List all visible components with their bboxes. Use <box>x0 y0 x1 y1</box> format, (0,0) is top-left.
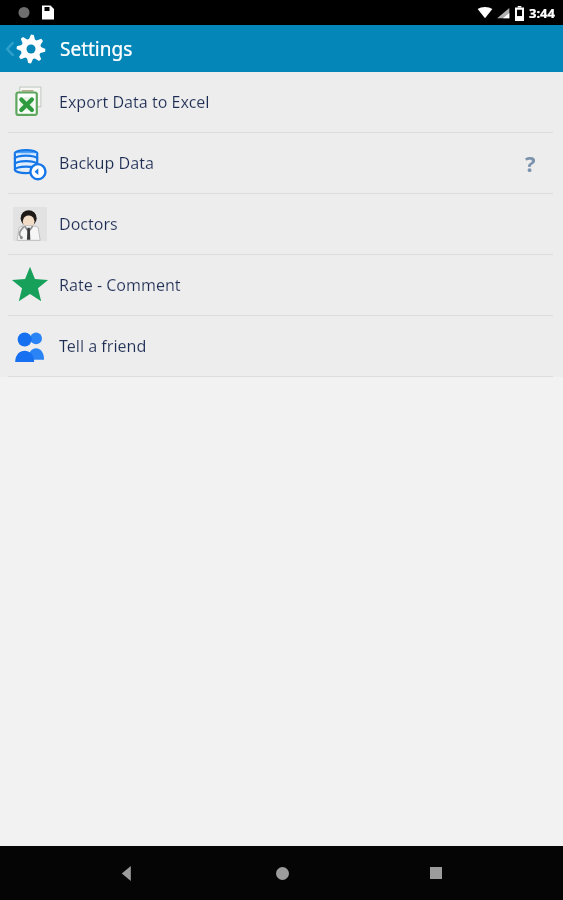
staticText: Export Data to Excel <box>59 91 210 113</box>
button[interactable]: Recent apps <box>409 846 463 900</box>
staticText: ? <box>525 148 536 178</box>
button[interactable]: Back <box>100 846 154 900</box>
staticText: Settings <box>60 36 133 62</box>
button[interactable]: Doctors <box>0 194 563 254</box>
button[interactable]: Backup Data <box>0 133 563 193</box>
button[interactable]: Rate - Comment <box>0 255 563 315</box>
button[interactable]: Help <box>515 148 545 178</box>
button[interactable]: Tell a friend <box>0 316 563 376</box>
button[interactable]: Home <box>255 846 309 900</box>
staticText: Doctors <box>59 213 118 235</box>
staticText: Backup Data <box>59 152 154 174</box>
button[interactable]: Back <box>0 25 52 72</box>
staticText: Rate - Comment <box>59 274 181 296</box>
staticText: Tell a friend <box>59 335 147 357</box>
staticText: 3:44 <box>529 4 555 22</box>
button[interactable]: Export Data to Excel <box>0 72 563 132</box>
